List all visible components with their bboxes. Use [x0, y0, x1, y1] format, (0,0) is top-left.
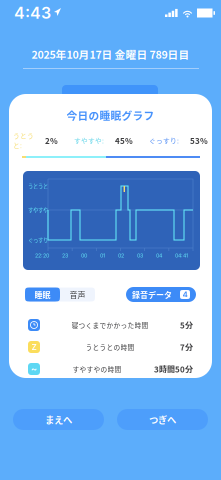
staticText: ~ — [31, 363, 37, 375]
button[interactable]: つぎへ — [117, 409, 208, 430]
staticText: 04:41 — [175, 252, 188, 259]
staticText: まえへ — [45, 413, 72, 426]
staticText: すやすやの時間 — [72, 364, 121, 374]
staticText: つぎへ — [149, 413, 176, 426]
button[interactable]: Z — [9, 336, 212, 358]
staticText: 寝つくまでかかった時間 — [71, 320, 148, 330]
staticText: 今日の睡眠グラフ — [66, 107, 154, 123]
staticText: 02 — [118, 252, 124, 259]
staticText: 22:20 — [35, 252, 49, 259]
staticText: 音声 — [69, 289, 85, 300]
staticText: 7分 — [180, 341, 193, 353]
staticText: 録音データ — [132, 289, 172, 300]
staticText: 4:43 — [14, 3, 51, 23]
staticText: 2% — [45, 135, 58, 146]
staticText: 4 — [182, 290, 187, 299]
button[interactable]: 録音データ — [126, 287, 196, 302]
staticText: すやすや: — [74, 136, 104, 145]
button[interactable]: まえへ — [13, 409, 104, 430]
staticText: 53% — [190, 135, 208, 146]
staticText: 2025年10月17日 金曜日 789日目 — [31, 46, 189, 62]
button[interactable]: 寝つくまでかかった時間 — [9, 314, 212, 336]
staticText: 03 — [137, 252, 143, 259]
button[interactable]: 音声 — [60, 287, 95, 301]
staticText: 3時間50分 — [154, 363, 193, 375]
button[interactable]: 睡眠 — [25, 287, 60, 301]
staticText: 睡眠 — [34, 289, 50, 300]
staticText: 01 — [100, 252, 105, 259]
staticText: 23 — [62, 252, 68, 259]
staticText: ぐっすり: — [149, 136, 179, 145]
staticText: 00 — [81, 252, 87, 259]
staticText: うとうと — [28, 182, 48, 190]
staticText: うとうと: — [13, 131, 34, 150]
staticText: 04 — [156, 252, 162, 259]
staticText: すやすや — [28, 206, 48, 214]
staticText: 45% — [115, 135, 133, 146]
staticText: うとうとの時間 — [85, 342, 134, 352]
button[interactable]: ~ — [9, 358, 212, 380]
staticText: Z — [31, 342, 36, 352]
staticText: 5分 — [180, 319, 193, 331]
staticText: ぐっすり — [28, 236, 48, 244]
